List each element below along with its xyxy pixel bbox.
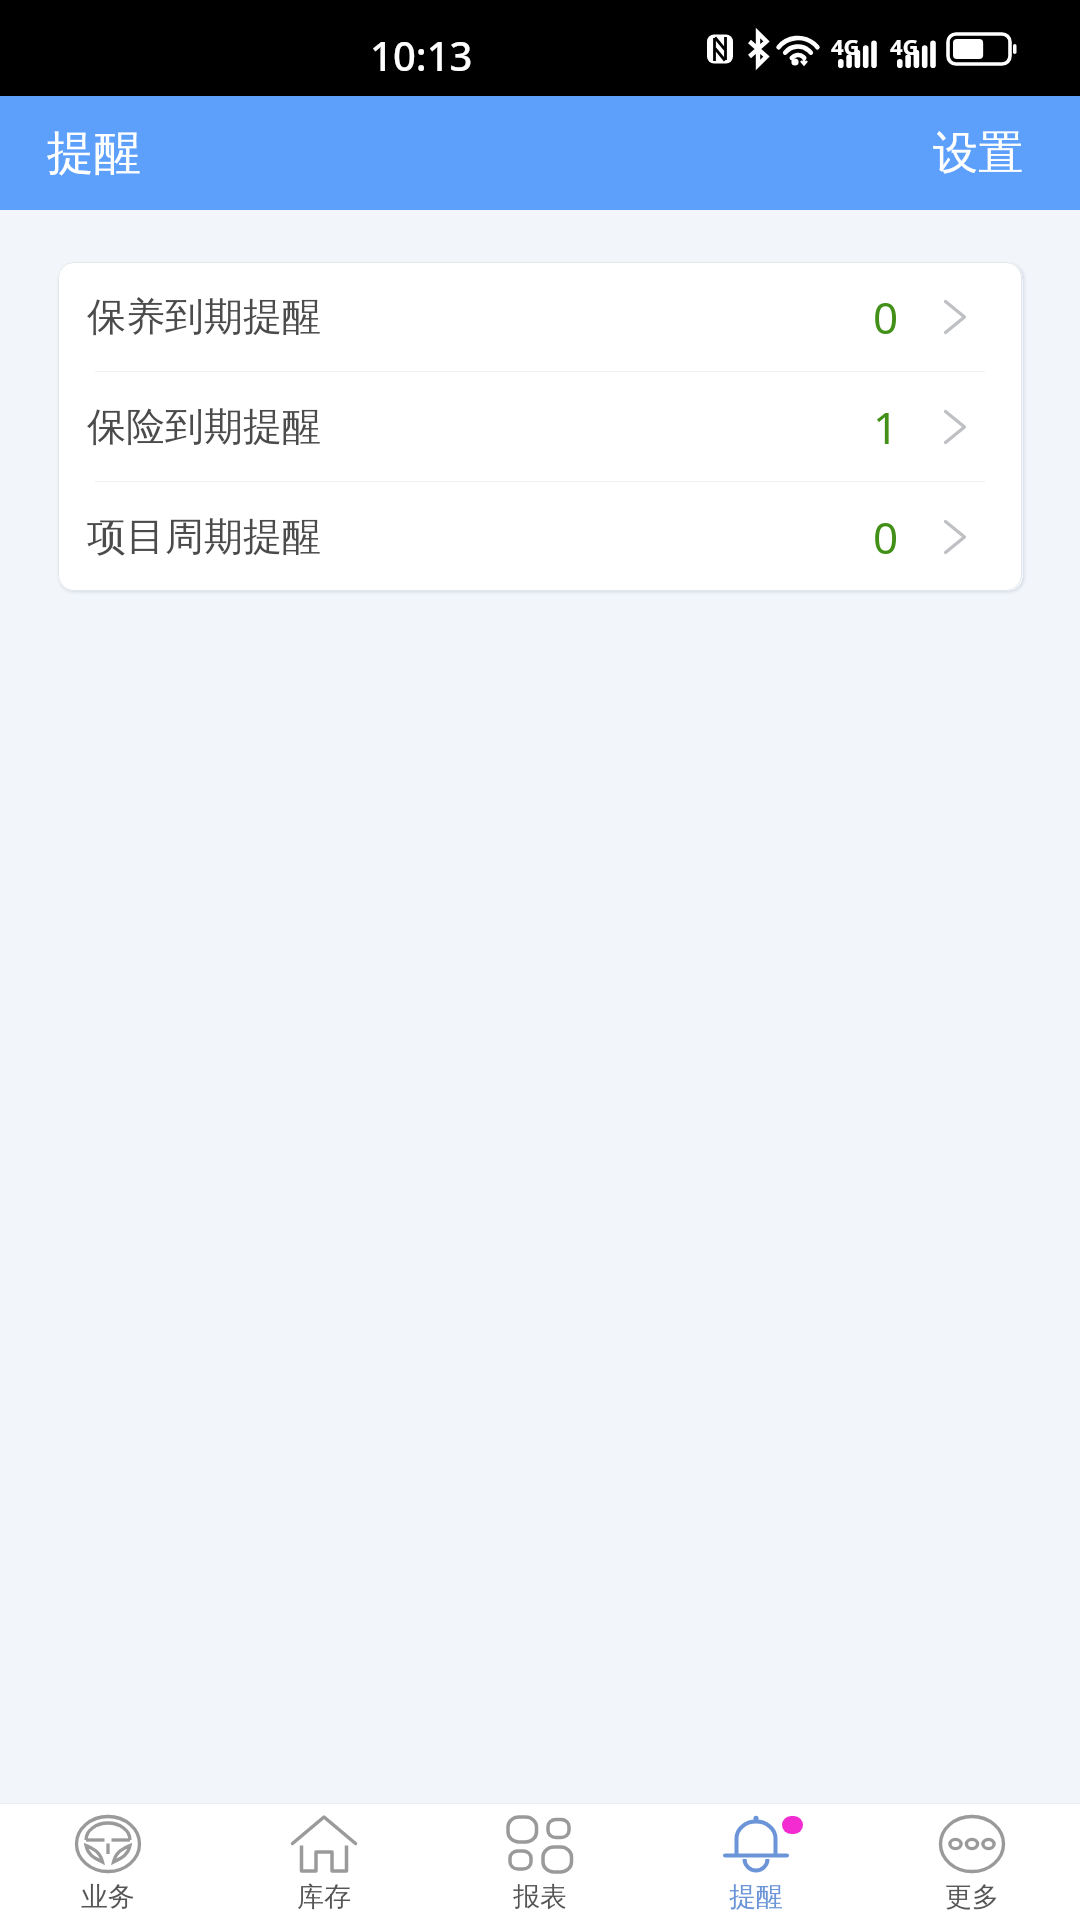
staticText: 4G xyxy=(831,31,860,61)
button[interactable]: Business xyxy=(0,1804,216,1920)
button[interactable]: 保养到期提醒 xyxy=(58,262,1022,371)
staticText: 更多 xyxy=(945,1880,999,1914)
staticText: 项目周期提醒 xyxy=(87,512,321,561)
staticText: 库存 xyxy=(297,1880,351,1914)
button[interactable]: Reminders xyxy=(648,1804,864,1920)
staticText: 提醒 xyxy=(47,124,141,183)
staticText: 0 xyxy=(873,507,899,567)
staticText: 保险到期提醒 xyxy=(87,402,321,451)
staticText: 0 xyxy=(873,287,899,347)
staticText: 设置 xyxy=(933,125,1023,182)
button[interactable]: Inventory xyxy=(216,1804,432,1920)
button[interactable]: Reports xyxy=(432,1804,648,1920)
staticText: 报表 xyxy=(513,1880,567,1914)
staticText: 保养到期提醒 xyxy=(87,292,321,341)
other: Reports xyxy=(505,1815,575,1873)
staticText: 1 xyxy=(873,397,899,457)
other: Business xyxy=(73,1815,143,1873)
button[interactable]: More xyxy=(864,1804,1080,1920)
staticText: 4G xyxy=(890,31,919,61)
other: Reminders xyxy=(721,1815,791,1873)
staticText: 提醒 xyxy=(729,1880,783,1914)
button[interactable]: 设置 xyxy=(893,103,1080,204)
other: Inventory xyxy=(289,1815,359,1873)
other: More xyxy=(937,1815,1007,1873)
staticText: 业务 xyxy=(81,1880,135,1914)
button[interactable]: 保险到期提醒 xyxy=(58,372,1022,481)
staticText: 10:13 xyxy=(370,28,473,82)
button[interactable]: 项目周期提醒 xyxy=(58,482,1022,591)
